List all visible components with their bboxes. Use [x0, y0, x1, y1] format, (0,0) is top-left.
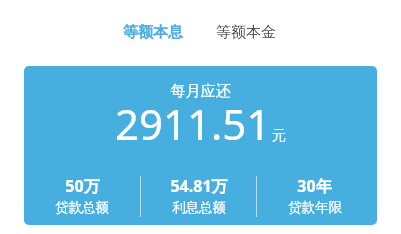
staticText: 54.81万	[170, 175, 228, 197]
button[interactable]: 50万	[24, 175, 140, 216]
button[interactable]: 等额本息	[115, 0, 191, 52]
button[interactable]: 等额本金	[208, 0, 284, 52]
staticText: 贷款总额	[55, 199, 109, 216]
button[interactable]: 54.81万	[141, 175, 256, 216]
button[interactable]: 30年	[257, 175, 372, 216]
staticText: 每月应还	[24, 82, 377, 101]
staticText: 元	[272, 127, 286, 145]
staticText: 贷款年限	[288, 199, 342, 216]
staticText: 等额本息	[123, 23, 183, 42]
staticText: 50万	[65, 175, 100, 197]
staticText: 30年	[297, 175, 332, 197]
staticText: 2911.51	[115, 95, 271, 152]
staticText: 等额本金	[216, 23, 276, 42]
staticText: 利息总额	[172, 199, 226, 216]
